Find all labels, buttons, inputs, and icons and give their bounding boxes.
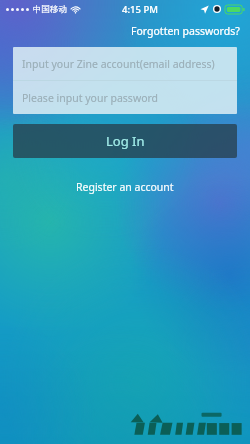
button[interactable]: Please input your password	[13, 81, 237, 114]
staticText: Please input your password	[22, 91, 159, 105]
staticText: Log In	[106, 132, 145, 150]
staticText: Forgotten passwords?	[131, 24, 240, 38]
button[interactable]: Log In	[13, 124, 237, 158]
staticText: Input your Zine account(email address)	[22, 57, 215, 71]
staticText: 中国移动	[33, 4, 67, 15]
staticText: Register an account	[76, 180, 174, 194]
button[interactable]: Input your Zine account(email address)	[13, 47, 237, 80]
button[interactable]: Register an account	[64, 176, 186, 198]
button[interactable]: Forgotten passwords?	[121, 21, 250, 41]
staticText: 4:15 PM	[122, 3, 158, 16]
